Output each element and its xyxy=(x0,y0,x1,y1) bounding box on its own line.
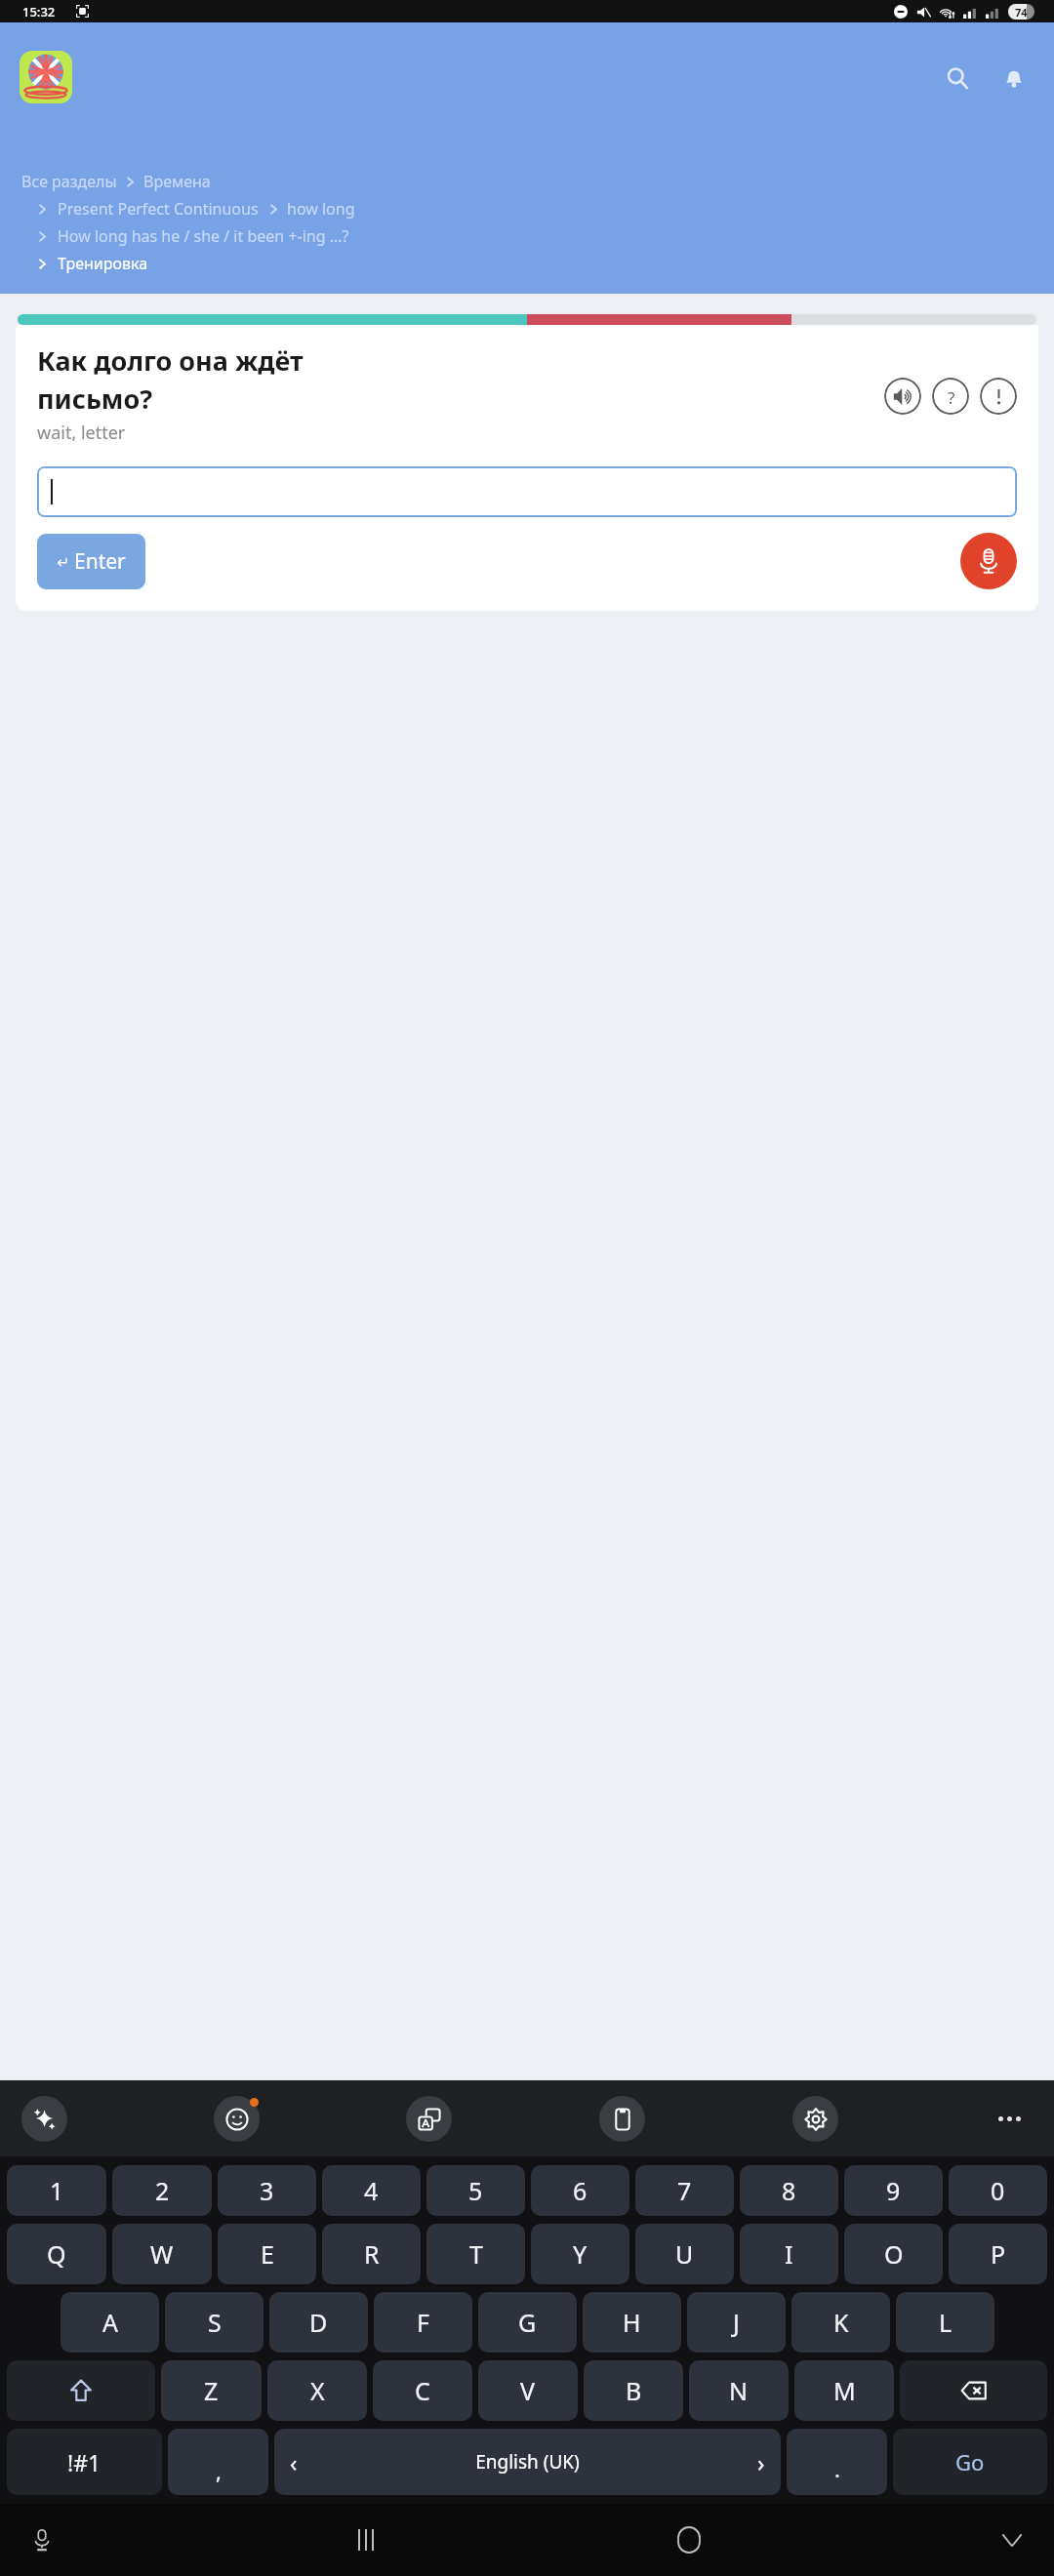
button[interactable]: E xyxy=(218,2224,316,2284)
button[interactable]: J xyxy=(687,2292,786,2353)
button[interactable]: Search xyxy=(939,60,976,97)
button[interactable]: 7 xyxy=(635,2165,734,2216)
button[interactable]: S xyxy=(165,2292,263,2353)
button[interactable]: Translate xyxy=(406,2096,452,2142)
button[interactable]: Q xyxy=(7,2224,106,2284)
button[interactable]: Hide keyboard xyxy=(990,2517,1034,2562)
button[interactable] xyxy=(37,466,1017,517)
button[interactable]: Clipboard xyxy=(599,2096,645,2142)
button[interactable]: AI suggestions xyxy=(21,2096,67,2142)
staticText: English (UK) xyxy=(298,2449,757,2475)
button[interactable]: 9 xyxy=(844,2165,943,2216)
button[interactable]: 6 xyxy=(531,2165,629,2216)
button[interactable]: 2 xyxy=(112,2165,212,2216)
staticText: D xyxy=(309,2306,328,2339)
staticText: S xyxy=(208,2306,222,2339)
button[interactable]: G xyxy=(478,2292,577,2353)
button[interactable]: W xyxy=(112,2224,212,2284)
button[interactable]: Settings xyxy=(792,2096,838,2142)
button[interactable]: Voice typing xyxy=(20,2517,64,2562)
staticText: Go xyxy=(955,2447,985,2476)
staticText: 1 xyxy=(50,2174,64,2207)
button[interactable]: V xyxy=(478,2360,578,2421)
staticText: wait, letter xyxy=(37,421,126,445)
button[interactable]: H xyxy=(583,2292,681,2353)
button[interactable]: 5 xyxy=(426,2165,525,2216)
staticText: E xyxy=(261,2237,274,2271)
button[interactable]: M xyxy=(794,2360,894,2421)
staticText: How long has he / she / it been +-ing ..… xyxy=(58,225,349,247)
staticText: V xyxy=(520,2374,536,2407)
button[interactable]: More options xyxy=(986,2095,1033,2142)
button[interactable]: 1 xyxy=(7,2165,106,2216)
staticText: Enter xyxy=(74,547,126,576)
button[interactable]: !#1 xyxy=(7,2429,162,2495)
button[interactable]: Z xyxy=(161,2360,262,2421)
staticText: H xyxy=(623,2306,641,2339)
button[interactable]: Hint xyxy=(932,378,969,415)
button[interactable]: L xyxy=(896,2292,994,2353)
staticText: , xyxy=(216,2456,222,2485)
button[interactable]: C xyxy=(373,2360,472,2421)
button[interactable]: N xyxy=(689,2360,789,2421)
staticText: › xyxy=(757,2446,765,2478)
button[interactable]: Home xyxy=(667,2517,711,2562)
button[interactable]: R xyxy=(322,2224,421,2284)
button[interactable]: Y xyxy=(531,2224,629,2284)
staticText: 74 xyxy=(1015,5,1028,20)
button[interactable]: ‹ xyxy=(274,2429,781,2495)
button[interactable]: Go xyxy=(893,2429,1047,2495)
staticText: how long xyxy=(287,198,355,220)
button[interactable]: D xyxy=(269,2292,368,2353)
button[interactable]: F xyxy=(374,2292,472,2353)
staticText: 5 xyxy=(468,2174,483,2207)
button[interactable]: B xyxy=(584,2360,683,2421)
staticText: . xyxy=(834,2454,840,2483)
staticText: Q xyxy=(47,2237,66,2271)
button[interactable]: P xyxy=(949,2224,1047,2284)
button[interactable]: 4 xyxy=(322,2165,421,2216)
staticText: ‹ xyxy=(290,2446,298,2478)
staticText: Все разделы xyxy=(21,171,117,192)
button[interactable]: T xyxy=(426,2224,525,2284)
button[interactable]: Voice input xyxy=(960,533,1017,589)
button[interactable]: A xyxy=(61,2292,159,2353)
button[interactable]: O xyxy=(844,2224,943,2284)
button[interactable]: Emoji xyxy=(214,2096,260,2142)
button[interactable]: X xyxy=(267,2360,367,2421)
staticText: 7 xyxy=(677,2174,692,2207)
staticText: K xyxy=(833,2306,849,2339)
staticText: F xyxy=(417,2306,429,2339)
button[interactable]: I xyxy=(740,2224,838,2284)
button[interactable]: U xyxy=(635,2224,734,2284)
button[interactable]: 0 xyxy=(949,2165,1047,2216)
button[interactable]: 8 xyxy=(740,2165,838,2216)
staticText: T xyxy=(469,2237,483,2271)
staticText: ? xyxy=(948,386,955,407)
button[interactable]: . xyxy=(787,2429,887,2495)
staticText: N xyxy=(729,2374,749,2407)
staticText: 8 xyxy=(782,2174,796,2207)
button[interactable]: Recent apps xyxy=(344,2517,388,2562)
button[interactable]: Notifications xyxy=(995,60,1033,97)
staticText: C xyxy=(415,2374,430,2407)
staticText: Тренировка xyxy=(58,253,148,274)
button[interactable]: Backspace xyxy=(900,2360,1047,2421)
staticText: 3 xyxy=(260,2174,274,2207)
button[interactable]: Shift xyxy=(7,2360,155,2421)
button[interactable]: K xyxy=(791,2292,890,2353)
button[interactable]: Play audio xyxy=(884,378,921,415)
staticText: M xyxy=(833,2374,856,2407)
staticText: Y xyxy=(573,2237,588,2271)
button[interactable]: Enter xyxy=(37,534,145,589)
button[interactable]: Report xyxy=(980,378,1017,415)
button[interactable]: App logo xyxy=(20,51,72,103)
staticText: A xyxy=(102,2306,118,2339)
staticText: 4 xyxy=(364,2174,379,2207)
button[interactable]: , xyxy=(168,2429,268,2495)
staticText: Времена xyxy=(143,171,211,192)
button[interactable]: 3 xyxy=(218,2165,316,2216)
staticText: W xyxy=(150,2237,174,2271)
staticText: G xyxy=(518,2306,537,2339)
staticText: 9 xyxy=(886,2174,901,2207)
